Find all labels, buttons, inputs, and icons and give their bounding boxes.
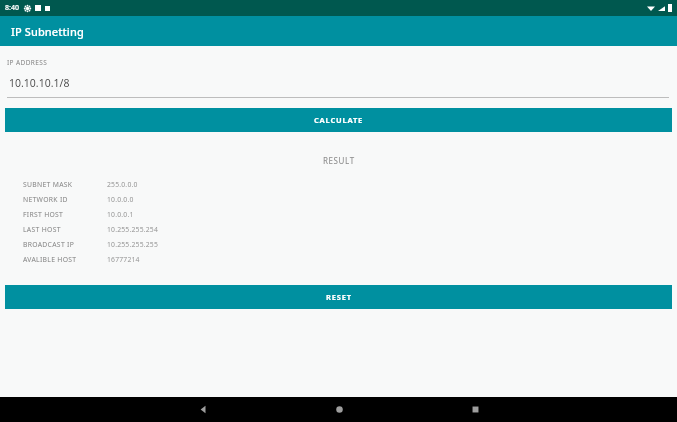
staticText: 255.0.0.0 xyxy=(107,180,138,189)
button[interactable]: FIRST HOST xyxy=(0,207,677,222)
staticText: 10.0.0.0 xyxy=(107,195,134,204)
staticText: IP Subnetting xyxy=(11,24,84,39)
button[interactable]: SUBNET MASK xyxy=(0,177,677,192)
staticText: IP ADDRESS xyxy=(7,58,48,67)
button[interactable]: AVALIBLE HOST xyxy=(0,252,677,267)
button[interactable]: LAST HOST xyxy=(0,222,677,237)
staticText: 10.0.0.1 xyxy=(107,210,134,219)
staticText: 10.255.255.255 xyxy=(107,240,159,249)
staticText: 8:40 xyxy=(5,3,19,13)
staticText: NETWORK ID xyxy=(23,195,68,204)
staticText: AVALIBLE HOST xyxy=(23,255,77,264)
staticText: LAST HOST xyxy=(23,225,61,234)
staticText: 16777214 xyxy=(107,255,140,264)
staticText: 10.10.10.1/8 xyxy=(9,76,70,90)
staticText: FIRST HOST xyxy=(23,210,64,219)
button[interactable]: RESET xyxy=(5,285,672,309)
staticText: CALCULATE xyxy=(314,115,364,125)
button[interactable]: Recents xyxy=(407,397,543,422)
staticText: BROADCAST IP xyxy=(23,240,75,249)
button[interactable]: CALCULATE xyxy=(5,108,672,132)
staticText: SUBNET MASK xyxy=(23,180,73,189)
button[interactable]: NETWORK ID xyxy=(0,192,677,207)
button[interactable]: Back xyxy=(135,397,271,422)
staticText: RESET xyxy=(326,292,352,302)
button[interactable]: BROADCAST IP xyxy=(0,237,677,252)
button[interactable]: Home xyxy=(271,397,407,422)
staticText: 10.255.255.254 xyxy=(107,225,159,234)
staticText: RESULT xyxy=(323,155,355,166)
button[interactable]: IP Subnetting xyxy=(0,16,677,46)
